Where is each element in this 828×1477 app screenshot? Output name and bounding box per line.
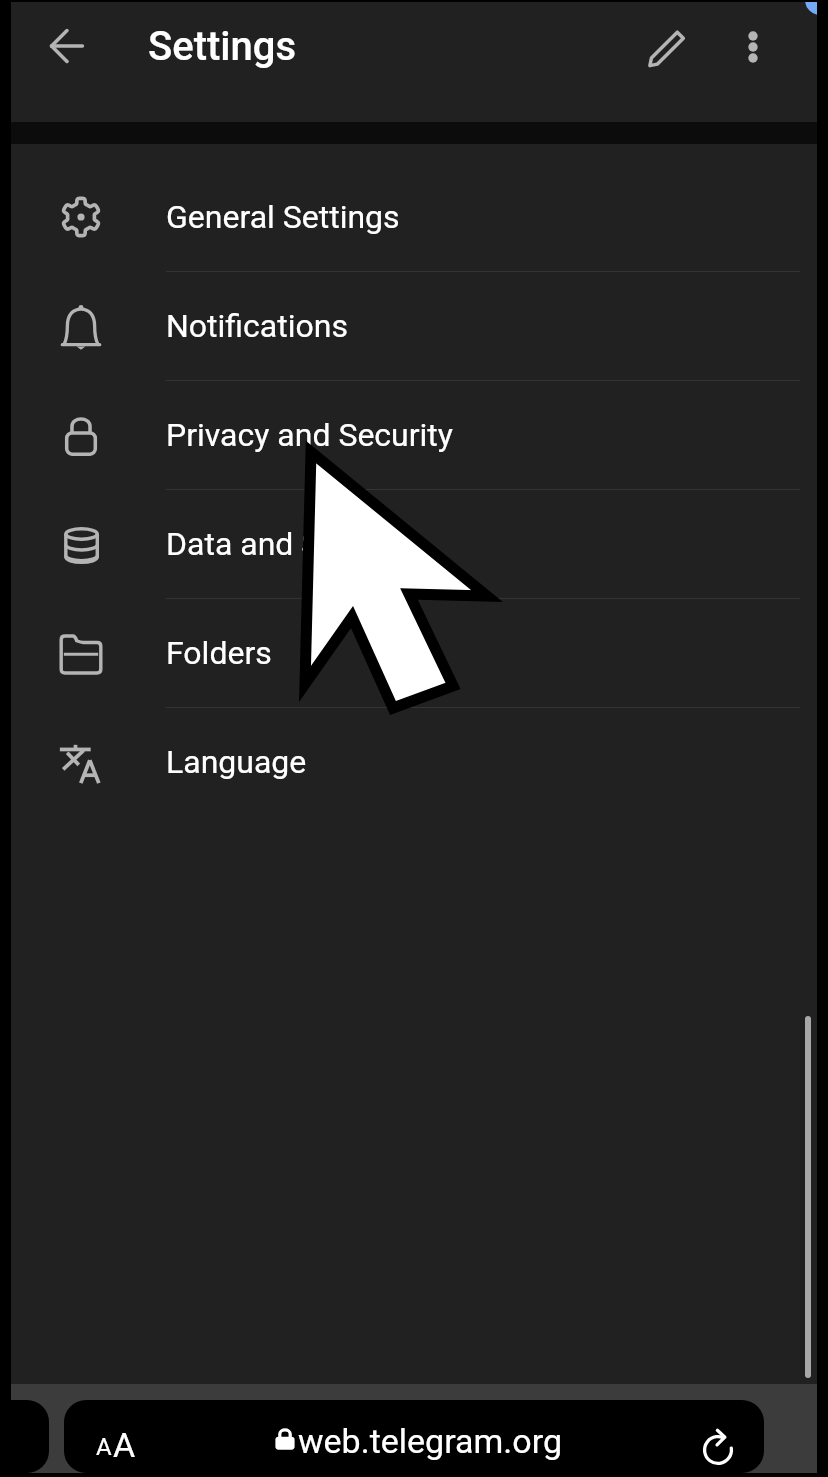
button[interactable]: General Settings (11, 163, 817, 272)
button[interactable] (0, 1400, 49, 1473)
staticText: Settings (148, 23, 297, 70)
button[interactable]: Back (28, 7, 106, 85)
button[interactable]: Folders (11, 599, 817, 708)
staticText: A (113, 1425, 136, 1465)
button[interactable]: Reload (695, 1427, 741, 1473)
button[interactable]: Privacy and Security (11, 381, 817, 490)
staticText: Notifications (166, 307, 348, 345)
button[interactable]: More options (715, 9, 791, 85)
staticText: Data and Storage (166, 525, 412, 563)
button[interactable]: Language (11, 708, 817, 817)
staticText: web.telegram.org (298, 1421, 562, 1461)
button[interactable]: Edit (629, 9, 705, 85)
button[interactable]: Data and Storage (11, 490, 817, 599)
staticText: Folders (166, 634, 272, 672)
staticText: Privacy and Security (166, 416, 453, 454)
staticText: Language (166, 743, 307, 781)
button[interactable]: A (64, 1400, 764, 1473)
button[interactable]: Notifications (11, 272, 817, 381)
staticText: General Settings (166, 198, 400, 236)
staticText: A (96, 1433, 112, 1461)
